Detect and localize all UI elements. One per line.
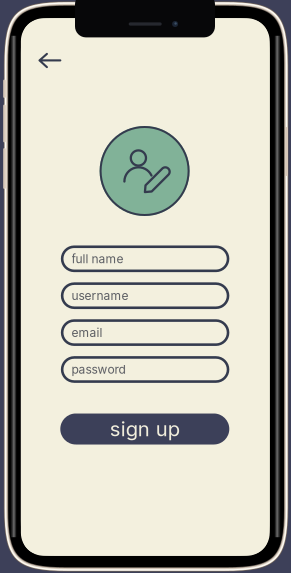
button[interactable]: email bbox=[61, 319, 229, 346]
staticText: username bbox=[72, 288, 129, 303]
staticText: sign up bbox=[110, 417, 180, 441]
button[interactable]: username bbox=[61, 282, 229, 309]
staticText: password bbox=[72, 362, 126, 377]
button[interactable]: Back bbox=[32, 45, 68, 75]
staticText: full name bbox=[72, 251, 124, 266]
button[interactable]: Edit profile photo bbox=[100, 126, 190, 216]
button[interactable]: password bbox=[61, 356, 229, 383]
button[interactable]: full name bbox=[61, 245, 229, 272]
button[interactable]: sign up bbox=[60, 413, 229, 444]
staticText: email bbox=[72, 325, 103, 340]
